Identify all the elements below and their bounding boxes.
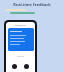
button[interactable]: Home bbox=[12, 64, 17, 69]
button[interactable]: Status bbox=[10, 12, 35, 14]
button[interactable]: Real-time feedback bbox=[0, 0, 64, 8]
button[interactable] bbox=[8, 28, 34, 51]
staticText: Feedback bbox=[15, 23, 26, 26]
staticText: Real-time feedback bbox=[13, 2, 51, 7]
button[interactable]: Progress bbox=[6, 9, 26, 11]
button[interactable]: Profile bbox=[24, 64, 29, 69]
